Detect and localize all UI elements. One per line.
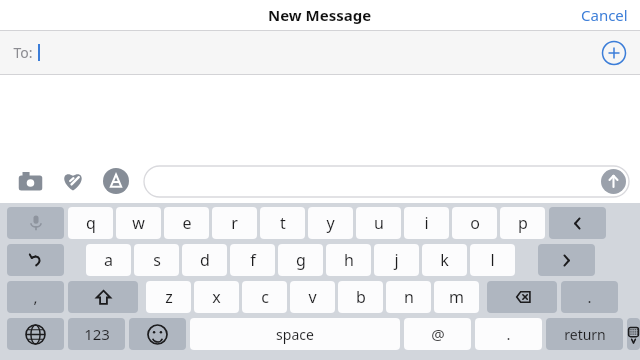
button[interactable]: a [86,244,131,276]
button[interactable]: Dictate [7,207,64,239]
button[interactable]: t [260,207,305,239]
button[interactable]: 123 [68,318,125,350]
staticText: t [280,212,286,234]
button[interactable]: , [7,281,64,313]
staticText: New Message [268,5,372,25]
button[interactable]: d [182,244,227,276]
button[interactable]: o [452,207,497,239]
button[interactable]: Previous field [549,207,606,239]
button[interactable]: e [164,207,209,239]
staticText: l [490,249,495,271]
staticText: y [326,212,335,234]
staticText: j [394,249,399,271]
staticText: k [440,249,449,271]
button[interactable]: b [338,281,383,313]
button[interactable]: Send [601,169,626,194]
button[interactable]: p [500,207,545,239]
button[interactable]: Change keyboard [7,318,64,350]
button[interactable]: Camera [15,166,45,196]
button[interactable]: . [475,318,542,350]
staticText: n [404,286,414,308]
staticText: v [308,286,317,308]
staticText: a [104,249,113,271]
staticText: b [356,286,366,308]
button[interactable]: c [242,281,287,313]
staticText: p [518,212,528,234]
staticText: c [261,286,269,308]
button[interactable]: n [386,281,431,313]
button[interactable]: w [116,207,161,239]
staticText: i [424,212,429,234]
button[interactable]: z [146,281,191,313]
staticText: @ [431,324,445,344]
staticText: Cancel [581,5,628,25]
button[interactable]: Emoji [129,318,186,350]
staticText: e [182,212,192,234]
button[interactable]: j [374,244,419,276]
button[interactable]: Digital Touch [58,166,88,196]
staticText: o [470,212,480,234]
staticText: . [587,287,592,307]
button[interactable]: Add contact [601,40,627,66]
button[interactable]: Send [144,166,629,197]
staticText: d [200,249,210,271]
button[interactable]: x [194,281,239,313]
button[interactable]: u [356,207,401,239]
button[interactable]: m [434,281,479,313]
staticText: space [276,325,314,344]
staticText: . [506,324,511,344]
button[interactable]: k [422,244,467,276]
button[interactable]: q [68,207,113,239]
staticText: m [449,286,464,308]
staticText: u [374,212,384,234]
button[interactable]: . [561,281,618,313]
button[interactable]: App Store [101,166,131,196]
staticText: z [165,286,173,308]
button[interactable]: Next field [538,244,595,276]
button[interactable]: s [134,244,179,276]
staticText: 123 [84,324,110,344]
staticText: h [344,249,354,271]
staticText: To: [13,43,33,62]
button[interactable]: Shift [68,281,138,313]
button[interactable]: f [230,244,275,276]
button[interactable]: Cancel [569,1,640,29]
button[interactable]: g [278,244,323,276]
staticText: x [212,286,221,308]
button[interactable]: Backspace [487,281,557,313]
staticText: f [250,249,256,271]
button[interactable]: l [470,244,515,276]
button[interactable]: Undo [7,244,64,276]
button[interactable]: To: [0,31,640,74]
button[interactable]: space [190,318,400,350]
button[interactable]: i [404,207,449,239]
staticText: w [132,212,145,234]
staticText: r [231,212,238,234]
staticText: s [153,249,161,271]
button[interactable]: @ [404,318,471,350]
button[interactable]: y [308,207,353,239]
button[interactable]: Hide keyboard [627,318,640,350]
button[interactable]: r [212,207,257,239]
button[interactable]: h [326,244,371,276]
button[interactable]: v [290,281,335,313]
button[interactable]: return [546,318,623,350]
staticText: g [296,249,306,271]
staticText: q [86,212,96,234]
staticText: , [33,287,38,307]
staticText: return [564,325,606,344]
